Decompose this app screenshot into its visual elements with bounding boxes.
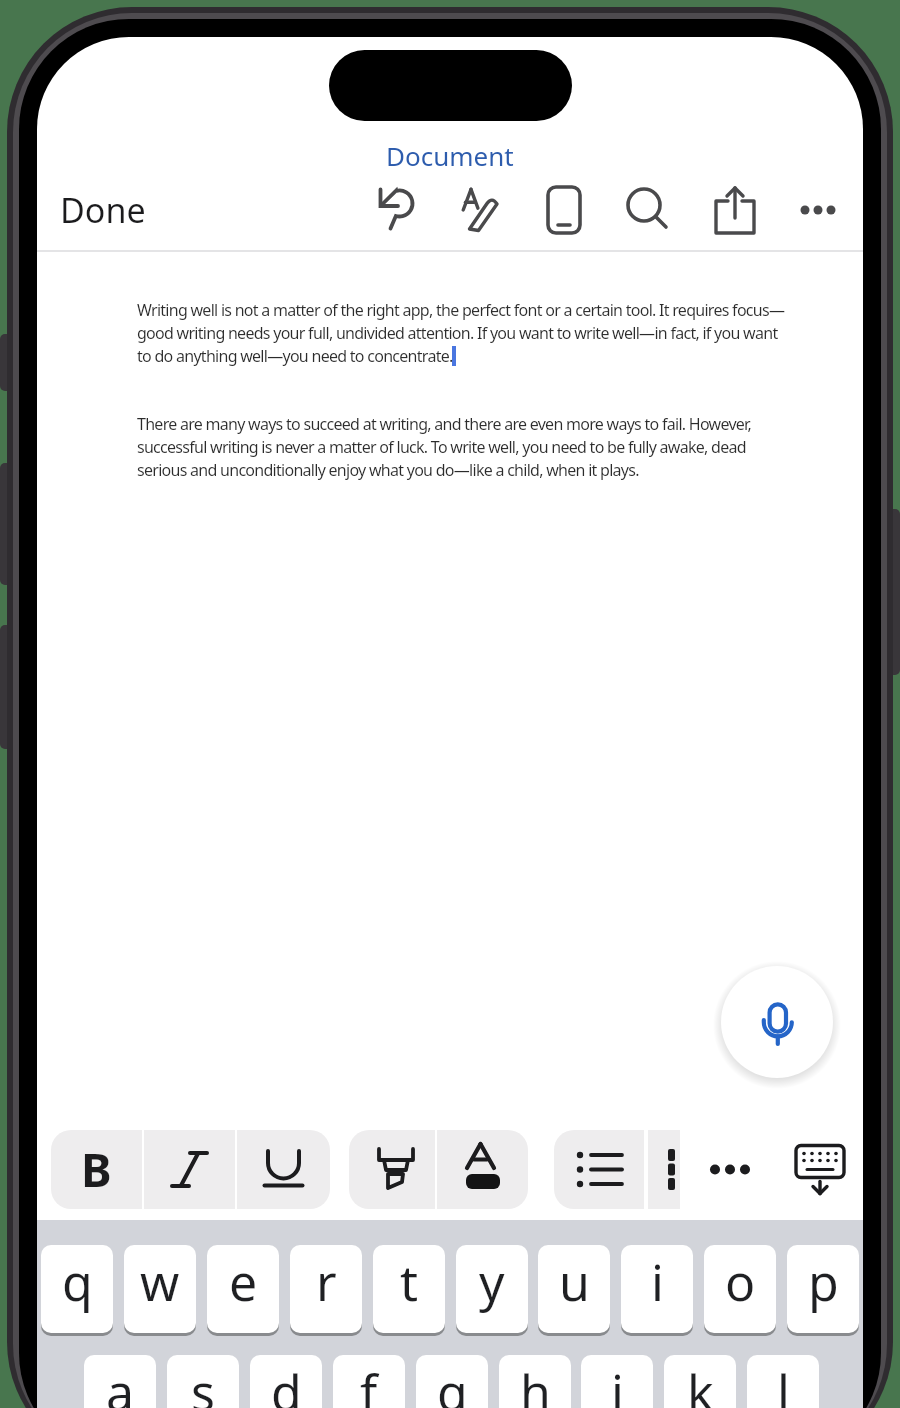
staticText: u (559, 1248, 590, 1316)
staticText: l (777, 1358, 790, 1408)
staticText: f (360, 1358, 378, 1408)
button[interactable] (370, 183, 424, 237)
button[interactable]: i (621, 1245, 693, 1333)
button[interactable]: j (581, 1355, 653, 1408)
staticText: g (437, 1358, 468, 1408)
button[interactable]: t (373, 1245, 445, 1333)
button[interactable]: h (499, 1355, 571, 1408)
button[interactable] (648, 1130, 680, 1209)
button[interactable]: a (84, 1355, 156, 1408)
staticText: Done (60, 187, 146, 233)
staticText: e (229, 1248, 258, 1316)
staticText: serious and unconditionally enjoy what y… (137, 459, 639, 481)
button[interactable]: q (41, 1245, 113, 1333)
button[interactable]: s (167, 1355, 239, 1408)
button[interactable]: p (787, 1245, 859, 1333)
button[interactable] (708, 183, 762, 237)
button[interactable] (721, 966, 833, 1078)
staticText: h (520, 1358, 551, 1408)
staticText: j (611, 1358, 624, 1408)
button[interactable] (788, 1130, 852, 1209)
staticText: Document (386, 138, 514, 173)
button[interactable]: y (456, 1245, 528, 1333)
staticText: Writing well is not a matter of the righ… (137, 299, 785, 321)
button[interactable]: d (250, 1355, 322, 1408)
button[interactable] (437, 1130, 528, 1209)
staticText: w (140, 1248, 180, 1316)
staticText: p (808, 1248, 839, 1316)
staticText: d (271, 1358, 302, 1408)
button[interactable]: k (664, 1355, 736, 1408)
button[interactable] (144, 1130, 235, 1209)
staticText: There are many ways to succeed at writin… (137, 413, 752, 435)
button[interactable]: w (124, 1245, 196, 1333)
button[interactable] (620, 183, 674, 237)
button[interactable]: g (416, 1355, 488, 1408)
staticText: i (651, 1248, 664, 1316)
button[interactable]: Done (60, 187, 146, 233)
staticText: y (479, 1248, 505, 1316)
button[interactable]: r (290, 1245, 362, 1333)
staticText: o (725, 1248, 756, 1316)
button[interactable] (554, 1130, 644, 1209)
staticText: r (316, 1248, 337, 1316)
button[interactable]: o (704, 1245, 776, 1333)
staticText: good writing needs your full, undivided … (137, 322, 778, 344)
button[interactable]: f (333, 1355, 405, 1408)
staticText: a (106, 1358, 135, 1408)
button[interactable]: B (51, 1130, 142, 1209)
button[interactable] (537, 183, 591, 237)
staticText: q (62, 1248, 93, 1316)
staticText: k (687, 1358, 714, 1408)
button[interactable] (349, 1130, 435, 1209)
staticText: t (400, 1248, 419, 1316)
staticText: successful writing is never a matter of … (137, 436, 746, 458)
staticText: to do anything well—you need to concentr… (137, 345, 453, 367)
button[interactable] (237, 1130, 330, 1209)
button[interactable] (452, 183, 506, 237)
staticText: s (191, 1358, 215, 1408)
button[interactable] (791, 183, 845, 237)
button[interactable] (700, 1130, 760, 1209)
staticText: B (81, 1138, 112, 1201)
button[interactable]: e (207, 1245, 279, 1333)
button[interactable]: l (747, 1355, 819, 1408)
button[interactable]: u (538, 1245, 610, 1333)
